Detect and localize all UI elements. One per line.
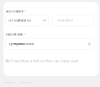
staticText: Recipient email — [5, 33, 23, 36]
button[interactable]: Phone number — [52, 15, 94, 26]
button[interactable]: s.green@example.com — [5, 38, 94, 49]
staticText: Phone number — [57, 19, 73, 22]
staticText: +61 (Australia) AU — [8, 19, 31, 22]
staticText: * — [24, 10, 25, 13]
staticText: Mobile number — [5, 10, 23, 13]
staticText: * — [24, 33, 25, 36]
button[interactable]: +61 (Australia) AU — [5, 15, 48, 26]
staticText: s.green@example.com — [8, 42, 33, 46]
staticText: We'll text them a link so they can claim… — [5, 59, 78, 63]
